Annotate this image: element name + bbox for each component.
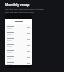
staticText: See how your spending habits changed ove… [5,8,44,14]
button[interactable] [7,49,30,53]
button[interactable] [7,55,30,59]
button[interactable] [7,25,30,29]
button[interactable] [7,37,30,41]
button[interactable] [7,61,30,65]
button[interactable] [7,43,30,47]
staticText: Monthly recap [5,2,30,7]
button[interactable] [7,31,30,35]
